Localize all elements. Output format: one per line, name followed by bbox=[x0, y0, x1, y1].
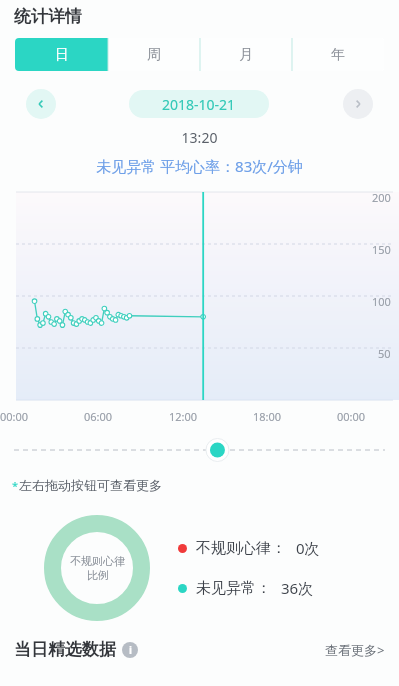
button[interactable]: 不规则心律： bbox=[178, 538, 320, 558]
staticText: 06:00 bbox=[84, 409, 113, 424]
button[interactable]: 周 bbox=[108, 38, 200, 71]
button[interactable]: 查看更多> bbox=[325, 641, 385, 659]
button[interactable]: 未见异常： bbox=[178, 578, 314, 598]
staticText: 左右拖动按钮可查看更多 bbox=[19, 477, 162, 493]
staticText: 18:00 bbox=[253, 409, 282, 424]
staticText: 查看更多> bbox=[325, 641, 385, 659]
staticText: 200 bbox=[372, 190, 391, 205]
staticText: 2018-10-21 bbox=[162, 95, 236, 114]
button[interactable]: Info bbox=[122, 642, 138, 658]
staticText: * bbox=[12, 478, 19, 493]
button[interactable]: Next day bbox=[343, 89, 373, 119]
staticText: 12:00 bbox=[169, 409, 198, 424]
button[interactable]: 年 bbox=[292, 38, 384, 71]
staticText: 日 bbox=[55, 46, 69, 64]
staticText: 当日精选数据 bbox=[14, 639, 116, 660]
button[interactable]: 日 bbox=[15, 38, 108, 71]
staticText: 未见异常 平均心率：83次/分钟 bbox=[0, 156, 399, 176]
button[interactable]: 2018-10-21 bbox=[129, 90, 269, 118]
staticText: 150 bbox=[372, 242, 391, 257]
staticText: 年 bbox=[331, 46, 345, 64]
staticText: 00:00 bbox=[0, 409, 29, 424]
staticText: i bbox=[129, 643, 132, 657]
staticText: 周 bbox=[147, 46, 161, 64]
staticText: 统计详情 bbox=[14, 6, 82, 27]
staticText: 未见异常： bbox=[196, 579, 271, 598]
staticText: 36次 bbox=[281, 578, 314, 598]
staticText: 0次 bbox=[296, 538, 320, 558]
staticText: 不规则心律 bbox=[70, 554, 125, 568]
staticText: 50 bbox=[378, 346, 391, 361]
button[interactable]: Time scrubber bbox=[0, 436, 399, 464]
button[interactable]: 不规则心律 bbox=[44, 515, 150, 621]
staticText: 13:20 bbox=[0, 128, 399, 147]
staticText: 月 bbox=[239, 46, 253, 64]
button[interactable]: 月 bbox=[200, 38, 292, 71]
button[interactable]: Previous day bbox=[26, 89, 56, 119]
staticText: 比例 bbox=[87, 568, 109, 582]
staticText: 不规则心律： bbox=[196, 539, 286, 558]
staticText: 100 bbox=[372, 294, 391, 309]
staticText: 00:00 bbox=[337, 409, 366, 424]
